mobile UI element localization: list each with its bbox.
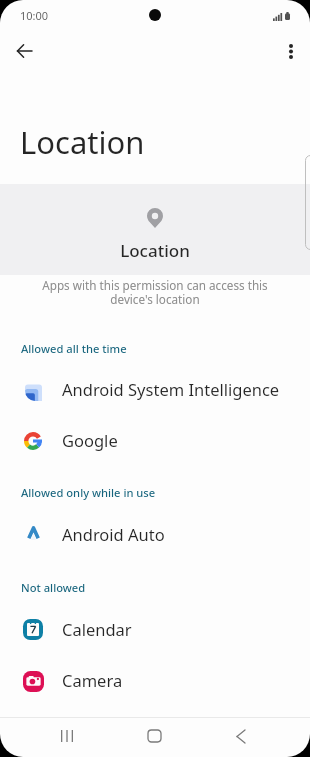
staticText: Location	[20, 121, 145, 163]
staticText: Allowed all the time	[21, 341, 127, 356]
staticText: Apps with this permission can access thi…	[0, 277, 310, 308]
staticText: Allowed only while in use	[21, 485, 156, 500]
staticText: Camera	[62, 669, 123, 691]
staticText: Calendar	[62, 618, 132, 640]
staticText: Android System Intelligence	[62, 378, 280, 400]
button[interactable]: Google	[0, 417, 310, 463]
staticText: Not allowed	[21, 580, 86, 595]
button[interactable]: Camera	[0, 657, 310, 703]
button[interactable]: Recent apps	[43, 716, 91, 756]
staticText: Google	[62, 429, 118, 451]
staticText: 10:00	[20, 8, 49, 23]
button[interactable]: Navigate up	[4, 31, 44, 71]
button[interactable]: Android System Intelligence	[0, 366, 310, 412]
button[interactable]: Back	[217, 716, 265, 756]
staticText: Android Auto	[62, 523, 165, 545]
button[interactable]: Calendar	[0, 606, 310, 652]
staticText: Location	[0, 239, 310, 262]
button[interactable]: Home	[130, 716, 178, 756]
button[interactable]: More options	[271, 31, 310, 71]
button[interactable]: Android Auto	[0, 511, 310, 557]
